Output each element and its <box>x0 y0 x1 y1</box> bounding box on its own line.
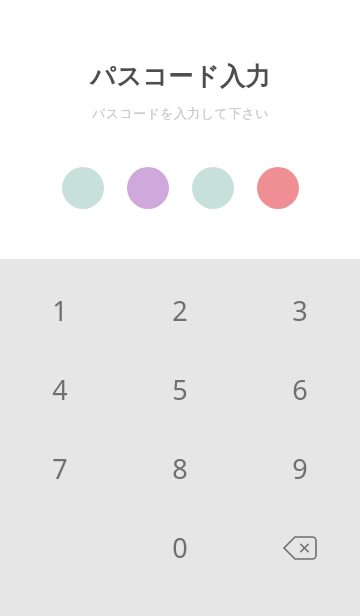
button[interactable]: 8 <box>120 429 240 508</box>
button[interactable]: 9 <box>240 429 360 508</box>
staticText: 8 <box>172 450 188 487</box>
button[interactable]: 6 <box>240 350 360 429</box>
button[interactable]: 3 <box>240 271 360 350</box>
button[interactable]: 0 <box>120 508 240 587</box>
staticText: 9 <box>292 450 308 487</box>
staticText: 4 <box>52 371 68 408</box>
staticText: パスコード入力 <box>90 61 271 92</box>
staticText: 6 <box>292 371 308 408</box>
button[interactable]: Delete <box>240 508 360 587</box>
staticText: 3 <box>292 292 308 329</box>
button[interactable]: 2 <box>120 271 240 350</box>
button[interactable]: 1 <box>0 271 120 350</box>
button[interactable]: 5 <box>120 350 240 429</box>
staticText: パスコードを入力して下さい <box>92 105 269 121</box>
staticText: 1 <box>52 292 68 329</box>
button[interactable]: 7 <box>0 429 120 508</box>
button[interactable]: 4 <box>0 350 120 429</box>
staticText: 5 <box>172 371 188 408</box>
staticText: 7 <box>52 450 68 487</box>
staticText: 0 <box>172 529 188 566</box>
staticText: 2 <box>172 292 188 329</box>
